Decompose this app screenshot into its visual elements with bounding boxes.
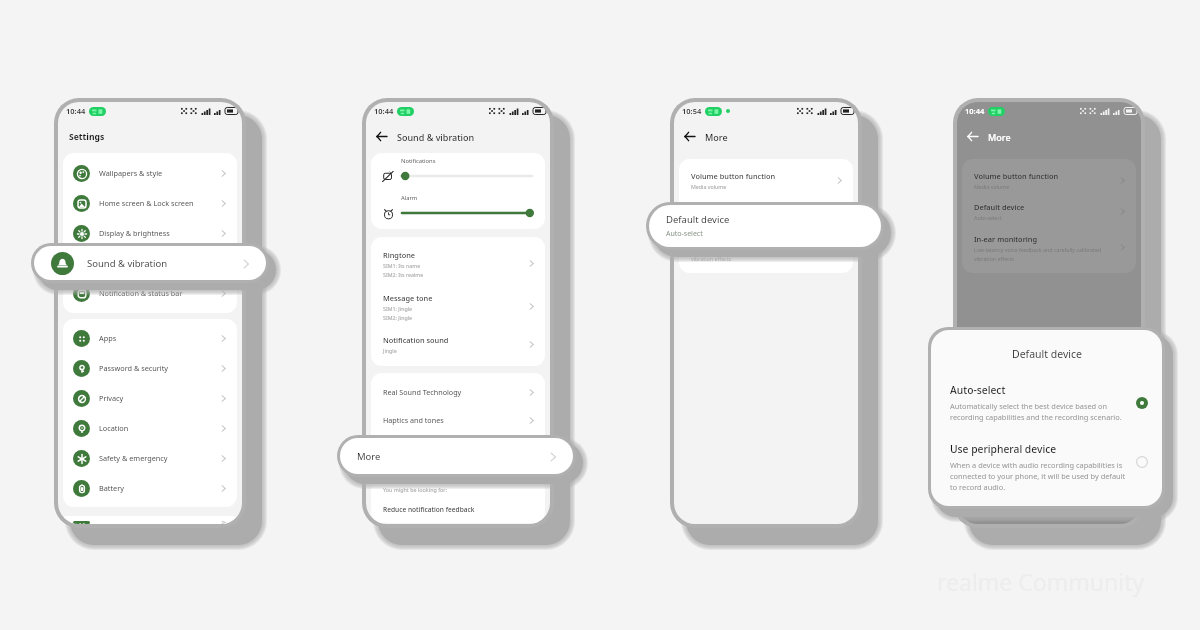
staticText: Sound & vibration (99, 258, 161, 268)
staticText: Battery (99, 483, 124, 493)
staticText: Default device (691, 202, 742, 212)
button[interactable]: Volume button function (962, 165, 1136, 196)
button[interactable]: Wallpapers & style (63, 158, 237, 188)
staticText: Real Sound Technology (383, 387, 462, 397)
staticText: Alarm (401, 194, 418, 202)
button[interactable]: Back (682, 129, 697, 144)
staticText: When a device with audio recording capab… (950, 460, 1126, 492)
staticText: Display & brightness (99, 228, 170, 238)
staticText: Haptics and tones (383, 415, 444, 425)
button[interactable]: Battery (63, 473, 237, 503)
button[interactable]: Real Sound Technology (371, 378, 545, 406)
staticText: Low-latency voice feedback and carefully… (691, 246, 819, 253)
button[interactable]: Auto-select (950, 383, 1148, 422)
button[interactable]: In-ear monitoring (679, 227, 853, 268)
staticText: You might be looking for: (383, 486, 447, 493)
button[interactable]: Default device (649, 205, 881, 247)
staticText: Reduce notification feedback (383, 505, 475, 514)
staticText: SIM2: Its realme (383, 271, 424, 278)
staticText: vibration effects (974, 255, 1015, 262)
button[interactable]: In-ear monitoring (962, 227, 1136, 268)
button[interactable]: Location (63, 413, 237, 443)
staticText: Jingle (383, 347, 397, 354)
staticText: 10:44 (66, 106, 86, 116)
staticText: Settings (69, 131, 105, 143)
staticText: SIM1: Jingle (383, 305, 413, 312)
staticText: In-ear monitoring (974, 234, 1037, 244)
staticText: More (988, 131, 1011, 143)
staticText: Sound & vibration (397, 131, 475, 143)
button[interactable]: Back (965, 129, 980, 144)
button[interactable]: Password & security (63, 353, 237, 383)
button[interactable]: Volume button function (679, 165, 853, 196)
staticText: More (357, 450, 381, 463)
staticText: Media volume (691, 183, 727, 190)
staticText: Default device (974, 202, 1025, 212)
button[interactable]: Sound & vibration (34, 246, 266, 280)
button[interactable]: Default device (962, 196, 1136, 227)
button[interactable]: Use peripheral device (950, 442, 1148, 492)
button[interactable]: More (340, 438, 573, 474)
staticText: 10:44 (374, 106, 394, 116)
button[interactable]: Default device (679, 196, 853, 227)
staticText: Automatically select the best device bas… (950, 401, 1122, 422)
staticText: Apps (99, 333, 117, 343)
staticText: Ringtone (383, 250, 416, 260)
staticText: In-ear monitoring (691, 234, 754, 244)
staticText: Default device (666, 213, 730, 226)
button[interactable]: Notification & status bar (63, 278, 237, 308)
staticText: Media volume (974, 183, 1010, 190)
staticText: Notifications (401, 157, 436, 165)
button[interactable]: Notifications volume (382, 169, 534, 183)
staticText: Auto-select (691, 214, 719, 221)
staticText: Safety & emergency (99, 453, 168, 463)
button[interactable]: Notification sound (371, 328, 545, 361)
button[interactable]: More (371, 434, 545, 462)
staticText: SIM1: Its name (383, 262, 421, 269)
button[interactable]: Additional settings (63, 521, 237, 524)
button[interactable]: Display & brightness (63, 218, 237, 248)
staticText: Wallpapers & style (99, 168, 163, 178)
staticText: Use peripheral device (950, 442, 1057, 456)
staticText: Message tone (383, 293, 433, 303)
staticText: Auto-select (974, 214, 1002, 221)
staticText: Sound & vibration (87, 257, 168, 270)
staticText: Notification & status bar (99, 288, 183, 298)
staticText: Password & security (99, 363, 169, 373)
staticText: Auto-select (666, 229, 703, 239)
staticText: Home screen & Lock screen (99, 198, 194, 208)
staticText: vibration effects (691, 255, 732, 262)
staticText: Privacy (99, 393, 124, 403)
button[interactable]: Ringtone (371, 242, 545, 285)
button[interactable]: Sound & vibration (63, 248, 237, 278)
staticText: Notification sound (383, 335, 449, 345)
staticText: More (705, 131, 728, 143)
staticText: 10:54 (682, 106, 702, 116)
button[interactable]: Home screen & Lock screen (63, 188, 237, 218)
button[interactable]: Message tone (371, 285, 545, 328)
staticText: SIM2: Jingle (383, 314, 413, 321)
button[interactable]: Safety & emergency (63, 443, 237, 473)
button[interactable]: Haptics and tones (371, 406, 545, 434)
staticText: Auto-select (950, 383, 1006, 397)
staticText: Location (99, 423, 129, 433)
button[interactable]: Alarm volume (382, 206, 534, 220)
staticText: 10:44 (965, 106, 985, 116)
button[interactable]: Apps (63, 323, 237, 353)
staticText: Volume button function (691, 171, 776, 181)
staticText: Default device (1012, 347, 1082, 361)
button[interactable]: Privacy (63, 383, 237, 413)
staticText: Low-latency voice feedback and carefully… (974, 246, 1102, 253)
staticText: Volume button function (974, 171, 1059, 181)
button[interactable]: Back (374, 129, 389, 144)
